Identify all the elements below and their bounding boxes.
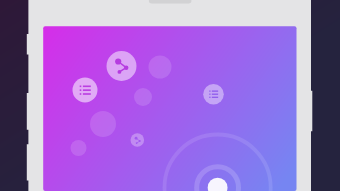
- button[interactable]: Device preview: [0, 0, 340, 191]
